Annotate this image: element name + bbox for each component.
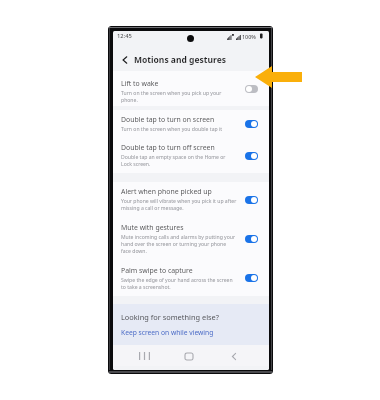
staticText: Mute incoming calls and alarms by puttin… xyxy=(121,234,237,255)
button[interactable]: Lift to wake xyxy=(113,71,269,106)
button[interactable]: Navigate up xyxy=(118,53,132,67)
staticText: Swipe the edge of your hand across the s… xyxy=(121,277,237,291)
staticText: Looking for something else? xyxy=(121,312,219,322)
staticText: Double tap to turn off screen xyxy=(121,143,215,152)
staticText: Turn on the screen when you pick up your… xyxy=(121,90,237,104)
staticText: 12:45 xyxy=(117,32,132,40)
staticText: Mute with gestures xyxy=(121,223,184,232)
staticText: Double tap to turn on screen xyxy=(121,115,215,124)
button[interactable]: Home xyxy=(179,348,199,364)
button[interactable]: Alert when phone picked up xyxy=(113,182,269,218)
button[interactable]: Switch on xyxy=(245,196,258,204)
button[interactable]: Double tap to turn off screen xyxy=(113,138,269,173)
button[interactable]: Switch on xyxy=(245,152,258,160)
button[interactable]: Keep screen on while viewing xyxy=(121,328,214,337)
button[interactable]: Double tap to turn on screen xyxy=(113,110,269,138)
staticText: Alert when phone picked up xyxy=(121,187,212,196)
button[interactable]: Back xyxy=(224,348,244,364)
button[interactable]: Switch off xyxy=(245,85,258,93)
staticText: Your phone will vibrate when you pick it… xyxy=(121,198,237,212)
button[interactable]: Recent apps xyxy=(134,348,154,364)
button[interactable]: Palm swipe to capture xyxy=(113,259,269,296)
staticText: Motions and gestures xyxy=(134,54,226,66)
staticText: Lift to wake xyxy=(121,79,159,88)
button[interactable]: Mute with gestures xyxy=(113,218,269,259)
button[interactable]: Switch on xyxy=(245,274,258,282)
staticText: Palm swipe to capture xyxy=(121,266,193,275)
staticText: Turn on the screen when you double tap i… xyxy=(121,126,223,133)
staticText: Double tap an empty space on the Home or… xyxy=(121,154,237,168)
staticText: 100% xyxy=(242,33,256,40)
button[interactable]: Switch on xyxy=(245,120,258,128)
button[interactable]: Switch on xyxy=(245,235,258,243)
